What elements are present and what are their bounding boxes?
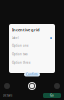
staticText: Incentive grid xyxy=(12,27,40,32)
button[interactable]: Confirm xyxy=(24,72,40,76)
staticText: Option three xyxy=(12,61,31,64)
staticText: Label xyxy=(12,36,19,40)
staticText: Option one xyxy=(12,44,29,47)
button[interactable]: Go xyxy=(43,93,61,98)
staticText: Option two xyxy=(12,52,28,56)
staticText: Confirm xyxy=(26,73,38,76)
button[interactable]: Switch camera xyxy=(54,83,60,89)
button[interactable]: Gallery xyxy=(4,83,10,89)
staticText: Go xyxy=(50,94,54,97)
staticText: Details xyxy=(3,94,12,97)
button[interactable]: Shutter xyxy=(28,82,36,90)
